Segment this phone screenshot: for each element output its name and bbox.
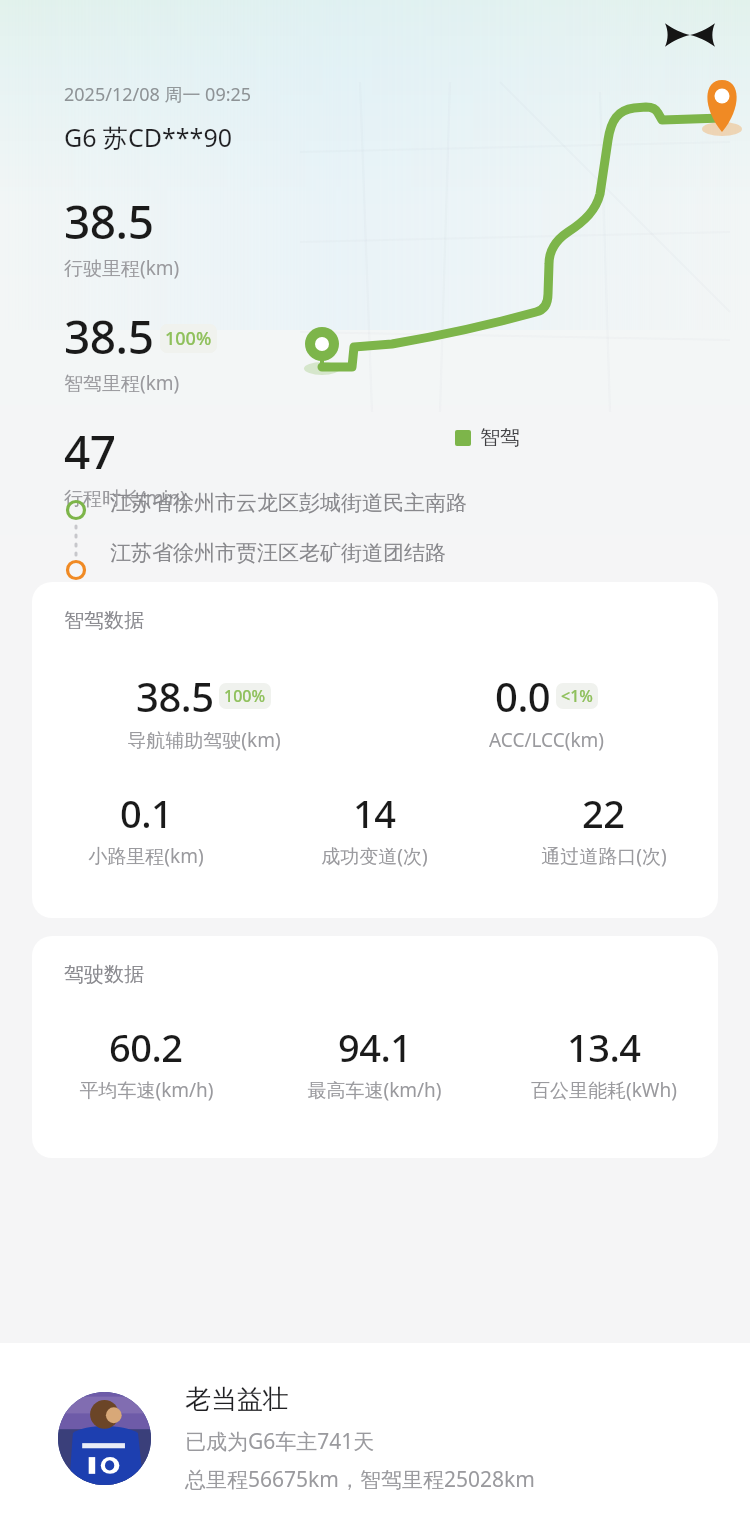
staticText: 智驾 <box>480 425 520 450</box>
staticText: 14 <box>353 787 396 839</box>
staticText: 13.4 <box>567 1021 641 1073</box>
staticText: 100% <box>165 326 212 351</box>
staticText: 38.5 <box>64 190 154 253</box>
staticText: 江苏省徐州市贾汪区老矿街道团结路 <box>110 540 446 566</box>
staticText: ACC/LCC(km) <box>489 727 604 753</box>
staticText: 总里程56675km，智驾里程25028km <box>185 1465 535 1494</box>
staticText: 成功变道(次) <box>321 843 428 869</box>
staticText: 100% <box>224 685 266 707</box>
button[interactable]: 智驾数据 <box>32 582 718 918</box>
staticText: 47 <box>64 420 116 483</box>
staticText: 38.5 <box>136 669 214 723</box>
staticText: 最高车速(km/h) <box>307 1077 442 1103</box>
staticText: 94.1 <box>338 1021 412 1073</box>
staticText: 2025/12/08 周一 09:25 <box>64 82 252 107</box>
staticText: 驾驶数据 <box>64 962 144 987</box>
staticText: <1% <box>561 685 593 707</box>
staticText: 智驾数据 <box>64 608 144 633</box>
button[interactable]: 驾驶数据 <box>32 936 718 1158</box>
staticText: 小路里程(km) <box>88 843 204 869</box>
staticText: 已成为G6车主741天 <box>185 1427 375 1456</box>
staticText: 平均车速(km/h) <box>79 1077 214 1103</box>
staticText: 老当益壮 <box>185 1383 289 1416</box>
staticText: 38.5 <box>64 305 154 368</box>
button[interactable]: 老当益壮 <box>0 1343 750 1533</box>
staticText: 0.0 <box>495 669 551 723</box>
button[interactable]: XPeng logo <box>662 7 718 63</box>
staticText: 60.2 <box>109 1021 183 1073</box>
staticText: 导航辅助驾驶(km) <box>127 727 281 753</box>
staticText: 智驾里程(km) <box>64 370 180 396</box>
staticText: 22 <box>582 787 625 839</box>
staticText: 行驶里程(km) <box>64 255 180 281</box>
staticText: 行程时长(min) <box>64 485 186 511</box>
staticText: 0.1 <box>120 787 173 839</box>
staticText: 百公里能耗(kWh) <box>531 1077 677 1103</box>
staticText: 江苏省徐州市云龙区彭城街道民主南路 <box>110 490 467 516</box>
staticText: 通过道路口(次) <box>541 843 667 869</box>
staticText: G6 苏CD***90 <box>64 120 232 154</box>
